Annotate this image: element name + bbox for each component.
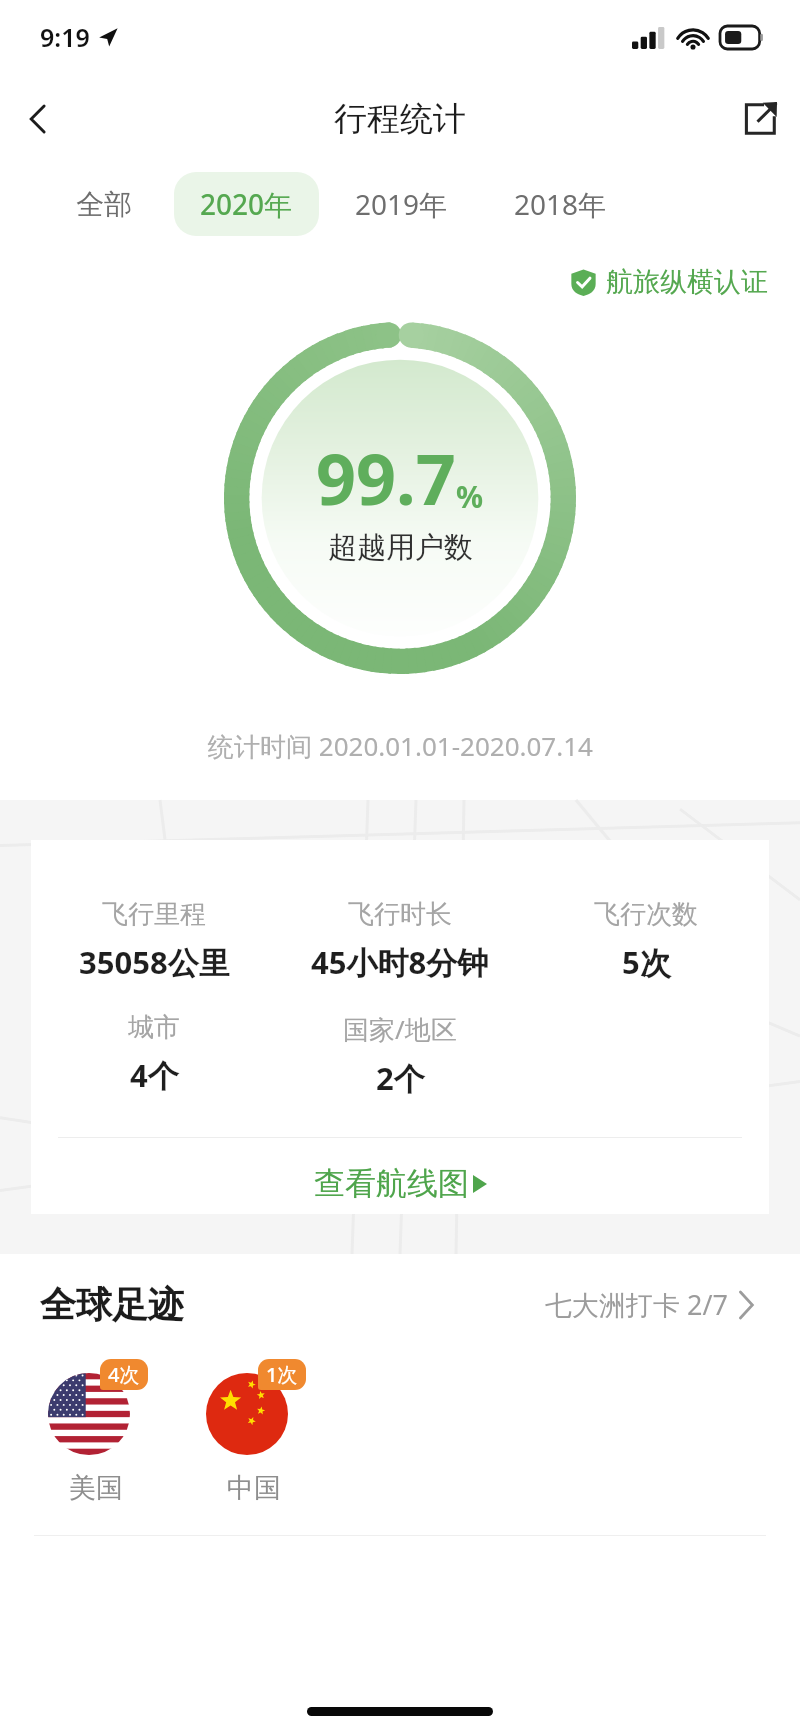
staticText: 4次 bbox=[108, 1361, 140, 1388]
staticText: 2019年 bbox=[355, 185, 448, 223]
staticText: 中国 bbox=[227, 1471, 281, 1505]
staticText: 9:19 bbox=[40, 20, 90, 54]
staticText: 2018年 bbox=[514, 185, 607, 223]
staticText: 全部 bbox=[76, 187, 132, 222]
staticText: 统计时间 2020.01.01-2020.07.14 bbox=[208, 728, 593, 764]
staticText: 飞行次数 bbox=[594, 898, 698, 931]
staticText: 4个 bbox=[130, 1054, 179, 1096]
button[interactable]: 2019年 bbox=[329, 172, 474, 236]
button[interactable]: 查看航线图 bbox=[31, 1138, 769, 1214]
staticText: 飞行里程 bbox=[102, 898, 206, 931]
staticText: 查看航线图 bbox=[314, 1164, 469, 1203]
staticText: 1次 bbox=[266, 1361, 298, 1388]
button[interactable]: 1次 bbox=[194, 1359, 314, 1505]
staticText: 99.7 bbox=[316, 430, 456, 525]
staticText: 美国 bbox=[69, 1471, 123, 1505]
staticText: 35058公里 bbox=[79, 941, 230, 983]
staticText: 航旅纵横认证 bbox=[606, 265, 768, 299]
staticText: 行程统计 bbox=[334, 98, 466, 140]
button[interactable]: 2020年 bbox=[174, 172, 319, 236]
staticText: 城市 bbox=[128, 1011, 180, 1044]
staticText: % bbox=[456, 476, 484, 517]
staticText: 飞行时长 bbox=[348, 898, 452, 931]
button[interactable]: Back bbox=[0, 81, 76, 157]
button[interactable]: Share bbox=[720, 79, 800, 159]
staticText: 超越用户数 bbox=[328, 529, 473, 566]
staticText: 七大洲打卡 2/7 bbox=[545, 1286, 728, 1323]
staticText: 2个 bbox=[376, 1057, 425, 1099]
staticText: 全球足迹 bbox=[40, 1282, 184, 1327]
button[interactable]: 4次 bbox=[36, 1359, 156, 1505]
staticText: 2020年 bbox=[200, 185, 293, 223]
button[interactable]: 2018年 bbox=[488, 172, 633, 236]
staticText: 45小时8分钟 bbox=[311, 941, 489, 983]
staticText: 5次 bbox=[622, 941, 671, 983]
button[interactable]: 航旅纵横认证 bbox=[564, 259, 774, 305]
button[interactable]: 全部 bbox=[50, 174, 158, 235]
button[interactable]: 七大洲打卡 2/7 bbox=[539, 1280, 760, 1329]
staticText: 国家/地区 bbox=[343, 1011, 457, 1047]
